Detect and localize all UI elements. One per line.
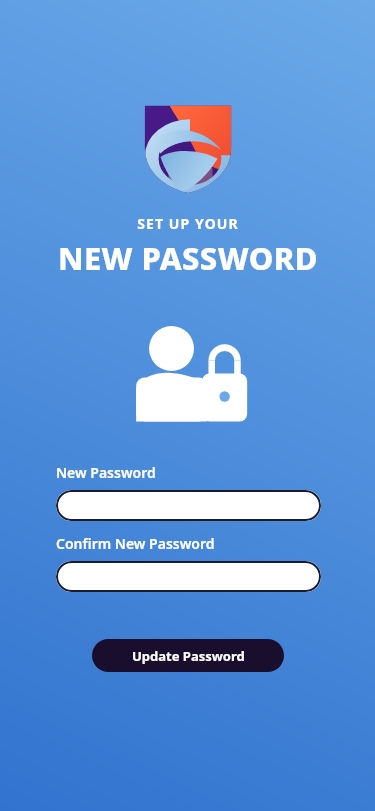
staticText: Confirm New Password (56, 534, 215, 553)
button[interactable] (56, 561, 321, 592)
button[interactable]: Update Password (92, 639, 284, 672)
staticText: Update Password (132, 647, 245, 665)
staticText: NEW PASSWORD (58, 237, 318, 279)
button[interactable] (56, 490, 321, 521)
staticText: SET UP YOUR (137, 214, 239, 233)
staticText: New Password (56, 463, 156, 482)
